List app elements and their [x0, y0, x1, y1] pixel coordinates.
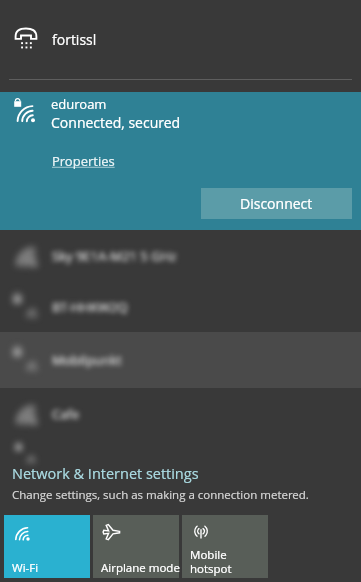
- button[interactable]: fortissl: [0, 0, 361, 79]
- staticText: BT-HHKW2Q: [52, 298, 128, 316]
- staticText: Cafe: [52, 405, 80, 423]
- staticText: Connected, secured: [51, 113, 181, 132]
- button[interactable]: BT-HHKW2Q: [0, 282, 361, 332]
- other: Wi-Fi: [13, 523, 33, 543]
- other: Mobile hotspot: [191, 523, 211, 543]
- staticText: Properties: [52, 152, 115, 170]
- staticText: Sky 9E1A-M21 5 GHz: [52, 247, 177, 265]
- button[interactable]: Properties: [52, 152, 115, 170]
- staticText: Wi-Fi: [12, 560, 98, 576]
- staticText: Mobilpunkt: [52, 351, 122, 369]
- button[interactable]: Sky 9E1A-M21 5 GHz: [0, 230, 361, 282]
- staticText: Mobile hotspot: [190, 547, 276, 576]
- staticText: eduroam: [51, 95, 107, 113]
- button[interactable]: Network & Internet settings: [12, 464, 199, 484]
- button[interactable]: Cafe: [0, 388, 361, 440]
- staticText: Airplane mode: [101, 560, 187, 576]
- button[interactable]: [0, 440, 361, 462]
- button[interactable]: Disconnect: [201, 188, 352, 219]
- button[interactable]: Mobilpunkt: [0, 332, 361, 388]
- button[interactable]: Airplane mode: [93, 515, 179, 578]
- button[interactable]: Mobile hotspot: [182, 515, 268, 578]
- staticText: Change settings, such as making a connec…: [12, 487, 309, 503]
- button[interactable]: Wi-Fi: [4, 515, 90, 578]
- staticText: fortissl: [52, 30, 97, 49]
- staticText: Network & Internet settings: [12, 464, 199, 484]
- staticText: Disconnect: [240, 194, 313, 213]
- other: Airplane mode: [102, 523, 122, 543]
